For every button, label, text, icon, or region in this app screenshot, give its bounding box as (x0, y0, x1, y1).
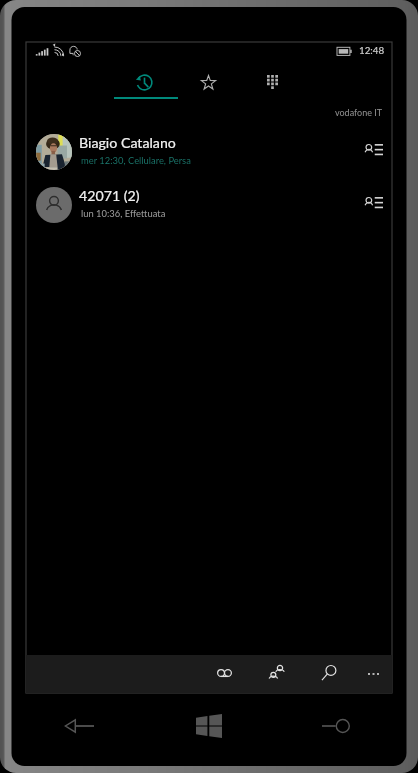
button[interactable]: Voicemail (205, 654, 243, 692)
staticText: lun 10:36, Effettuata (81, 208, 166, 219)
button[interactable]: More options (354, 655, 392, 693)
button[interactable]: 42071 (2) (26, 178, 392, 231)
button[interactable]: Recents (114, 61, 174, 103)
button[interactable]: Back (52, 700, 106, 752)
button[interactable]: Search (310, 654, 348, 692)
staticText: Biagio Catalano (79, 134, 176, 151)
button[interactable]: Favourites (178, 62, 238, 104)
button[interactable]: Search (309, 700, 363, 752)
button[interactable]: Biagio Catalano (26, 125, 392, 178)
button[interactable]: Start (182, 700, 236, 752)
staticText: vodafone IT (335, 107, 383, 118)
button[interactable]: Dialpad (242, 61, 302, 103)
staticText: 12:48 (359, 44, 385, 56)
staticText: 42071 (2) (79, 187, 140, 204)
staticText: mer 12:30, Cellulare, Persa (81, 155, 191, 166)
button[interactable]: Contact details (356, 133, 390, 167)
button[interactable]: Contacts (257, 654, 295, 692)
button[interactable]: Contact details (356, 186, 390, 220)
